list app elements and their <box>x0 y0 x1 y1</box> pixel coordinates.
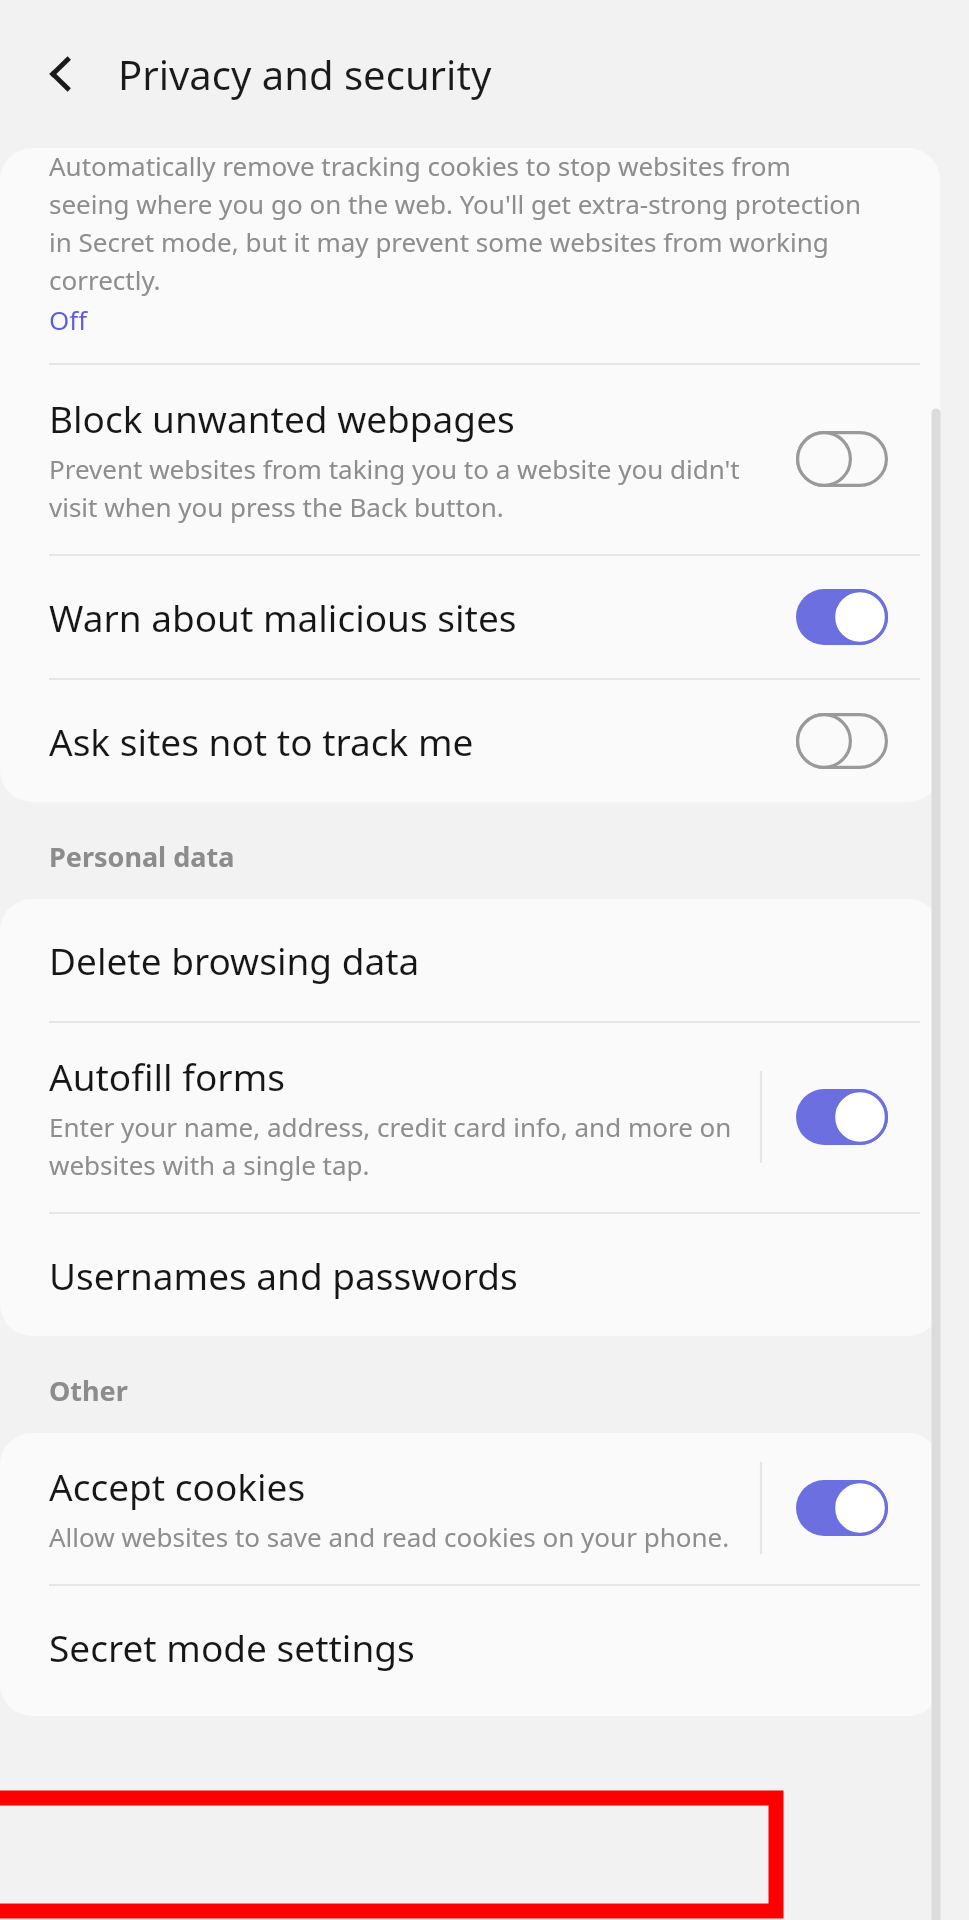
staticText: Usernames and passwords <box>49 1250 518 1300</box>
button[interactable]: Warn about malicious sites <box>0 556 940 678</box>
button[interactable]: Secret mode settings <box>0 1586 940 1716</box>
staticText: Warn about malicious sites <box>49 592 517 642</box>
button[interactable]: Block unwanted webpages <box>0 365 940 554</box>
staticText: Privacy and security <box>118 47 492 101</box>
button[interactable]: Accept cookies <box>0 1433 940 1584</box>
button[interactable]: On <box>796 1089 888 1145</box>
staticText: Other <box>49 1372 128 1409</box>
button[interactable]: On <box>796 1480 888 1536</box>
staticText: Enter your name, address, credit card in… <box>49 1109 744 1182</box>
button[interactable]: Delete browsing data <box>0 899 940 1021</box>
staticText: Ask sites not to track me <box>49 716 474 766</box>
staticText: Allow websites to save and read cookies … <box>49 1519 730 1554</box>
button[interactable]: Ask sites not to track me <box>0 680 940 802</box>
staticText: Automatically remove tracking cookies to… <box>49 148 878 297</box>
button[interactable]: Back <box>20 32 104 116</box>
button[interactable]: Usernames and passwords <box>0 1214 940 1336</box>
staticText: Autofill forms <box>49 1051 285 1101</box>
staticText: Prevent websites from taking you to a we… <box>49 451 776 524</box>
button[interactable]: Automatically remove tracking cookies to… <box>0 148 940 363</box>
staticText: Personal data <box>49 838 235 875</box>
staticText: Block unwanted webpages <box>49 393 515 443</box>
button[interactable]: On <box>796 589 888 645</box>
staticText: Secret mode settings <box>49 1622 415 1672</box>
staticText: Off <box>49 302 88 337</box>
staticText: Accept cookies <box>49 1461 306 1511</box>
button[interactable]: Off <box>796 713 888 769</box>
staticText: Delete browsing data <box>49 935 420 985</box>
button[interactable]: Off <box>796 431 888 487</box>
button[interactable]: Autofill forms <box>0 1023 940 1212</box>
